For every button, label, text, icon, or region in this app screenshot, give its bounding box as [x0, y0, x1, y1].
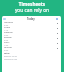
staticText: Total — [4, 52, 10, 55]
staticText: Develop — [4, 31, 13, 34]
button[interactable]: Meeting — [2, 21, 61, 26]
staticText: 1:30 — [4, 44, 9, 46]
staticText: 2:00 — [4, 49, 9, 51]
staticText: you can rely on — [0, 7, 64, 14]
staticText: 1:15 — [4, 29, 9, 31]
staticText: Regular 32:00 — [4, 55, 17, 58]
staticText: Testing — [4, 46, 12, 49]
button[interactable]: Docs — [2, 41, 61, 46]
staticText: 2:30 — [4, 24, 9, 26]
staticText: Meeting — [4, 21, 13, 24]
staticText: Timesheets — [0, 1, 64, 7]
staticText: 0:45 — [4, 39, 9, 41]
button[interactable]: Client — [2, 26, 61, 31]
button[interactable]: Review — [2, 36, 61, 41]
staticText: Client — [4, 26, 11, 29]
button[interactable]: Develop — [2, 31, 61, 36]
staticText: Today — [27, 17, 35, 21]
staticText: Overtime 4:00 — [4, 58, 18, 61]
staticText: Review — [4, 36, 12, 39]
staticText: Docs — [4, 41, 10, 44]
button[interactable]: Testing — [2, 46, 61, 51]
staticText: 4:00 — [4, 34, 9, 36]
button[interactable]: Today — [2, 16, 61, 21]
